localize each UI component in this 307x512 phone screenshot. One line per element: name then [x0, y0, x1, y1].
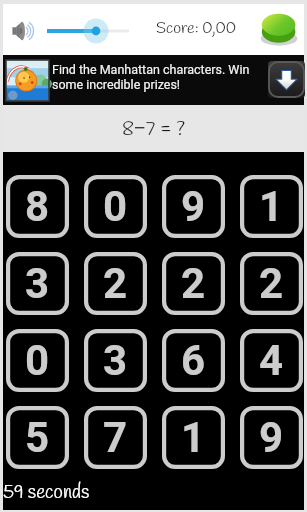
button[interactable]: 0 — [6, 329, 69, 392]
staticText: 3 — [25, 259, 50, 308]
button[interactable]: 5 — [6, 406, 69, 469]
staticText: 1 — [181, 413, 206, 462]
staticText: 4 — [259, 336, 284, 385]
staticText: 8 — [25, 182, 50, 231]
staticText: 5 — [25, 413, 50, 462]
button[interactable]: 2 — [162, 252, 225, 315]
staticText: 6 — [181, 336, 206, 385]
staticText: 9 — [259, 413, 284, 462]
staticText: 0 — [103, 182, 128, 231]
button[interactable]: 4 — [240, 329, 303, 392]
button[interactable]: 6 — [162, 329, 225, 392]
button[interactable]: Play — [259, 10, 299, 48]
button[interactable]: Volume slider — [39, 16, 135, 46]
button[interactable]: Download — [268, 61, 305, 98]
button[interactable]: 1 — [240, 175, 303, 238]
staticText: 3 — [103, 336, 128, 385]
button[interactable]: Volume — [12, 19, 34, 41]
staticText: 59 seconds — [3, 480, 90, 505]
button[interactable]: 1 — [162, 406, 225, 469]
staticText: 9 — [181, 182, 206, 231]
staticText: Find the Manhattan characters. Win some … — [52, 62, 250, 92]
button[interactable]: 9 — [162, 175, 225, 238]
staticText: Score: 0,00 — [156, 18, 237, 39]
button[interactable]: 3 — [6, 252, 69, 315]
button[interactable]: 7 — [84, 406, 147, 469]
staticText: 2 — [103, 259, 128, 308]
button[interactable]: 3 — [84, 329, 147, 392]
staticText: 2 — [181, 259, 206, 308]
button[interactable]: 8 — [6, 175, 69, 238]
staticText: 2 — [259, 259, 284, 308]
button[interactable]: 0 — [84, 175, 147, 238]
staticText: 0 — [25, 336, 50, 385]
button[interactable]: 9 — [240, 406, 303, 469]
staticText: 1 — [259, 182, 284, 231]
staticText: 8−7 = ? — [122, 114, 186, 143]
button[interactable]: 2 — [84, 252, 147, 315]
button[interactable]: 2 — [240, 252, 303, 315]
staticText: 7 — [103, 413, 128, 462]
